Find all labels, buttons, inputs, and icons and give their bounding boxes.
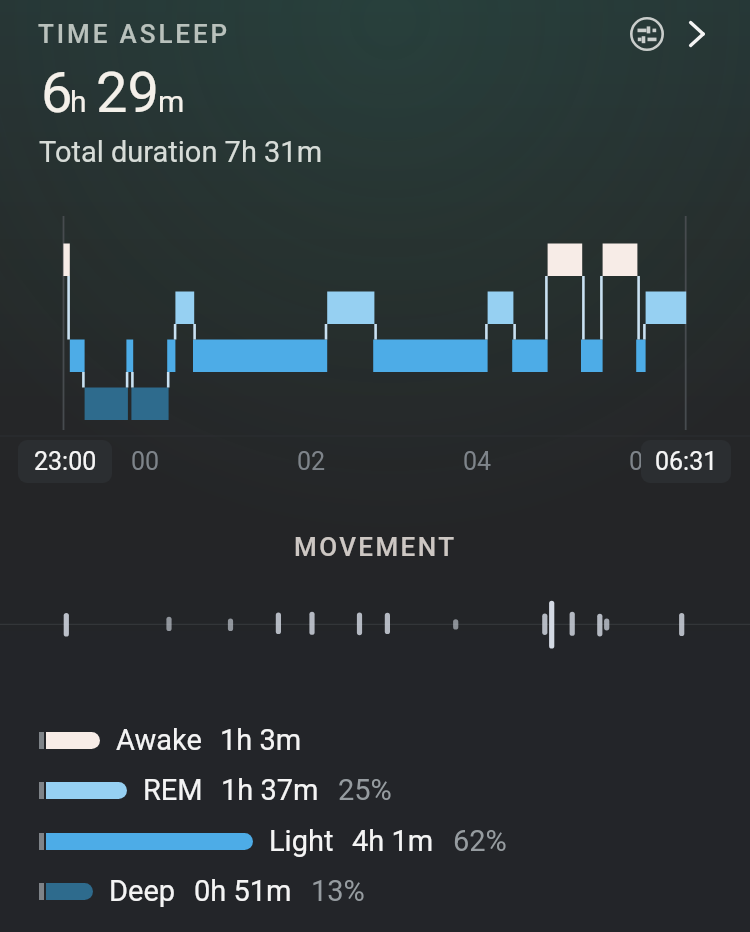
staticText: 62%: [453, 824, 507, 858]
staticText: 25%: [338, 773, 392, 807]
staticText: Deep: [109, 874, 176, 908]
staticText: 29: [96, 60, 159, 126]
button[interactable]: 06:31: [641, 440, 731, 483]
staticText: Light: [269, 824, 334, 858]
button[interactable]: Awake: [39, 715, 750, 765]
staticText: h: [70, 84, 87, 119]
staticText: m: [158, 84, 185, 119]
button[interactable]: REM: [39, 765, 750, 815]
staticText: 00: [131, 447, 160, 476]
staticText: 13%: [311, 874, 365, 908]
staticText: MOVEMENT: [294, 532, 457, 562]
button[interactable]: Light: [39, 816, 750, 866]
staticText: REM: [143, 773, 203, 807]
staticText: 1h 37m: [221, 773, 319, 807]
staticText: 1h 3m: [220, 723, 302, 757]
staticText: Total duration 7h 31m: [39, 135, 323, 169]
staticText: 0h 51m: [194, 874, 292, 908]
staticText: 04: [463, 447, 492, 476]
staticText: 4h 1m: [352, 824, 434, 858]
button[interactable]: 23:00: [18, 440, 112, 483]
button[interactable]: Deep: [39, 866, 750, 916]
staticText: 06: [629, 447, 658, 476]
staticText: 02: [297, 447, 326, 476]
staticText: TIME ASLEEP: [38, 19, 230, 49]
staticText: 6: [41, 60, 73, 126]
button[interactable]: Open sleep details: [669, 7, 722, 60]
staticText: Awake: [116, 723, 202, 757]
button[interactable]: Adjust sleep window: [620, 7, 673, 60]
staticText: 23:00: [34, 447, 97, 476]
staticText: 06:31: [655, 447, 718, 476]
